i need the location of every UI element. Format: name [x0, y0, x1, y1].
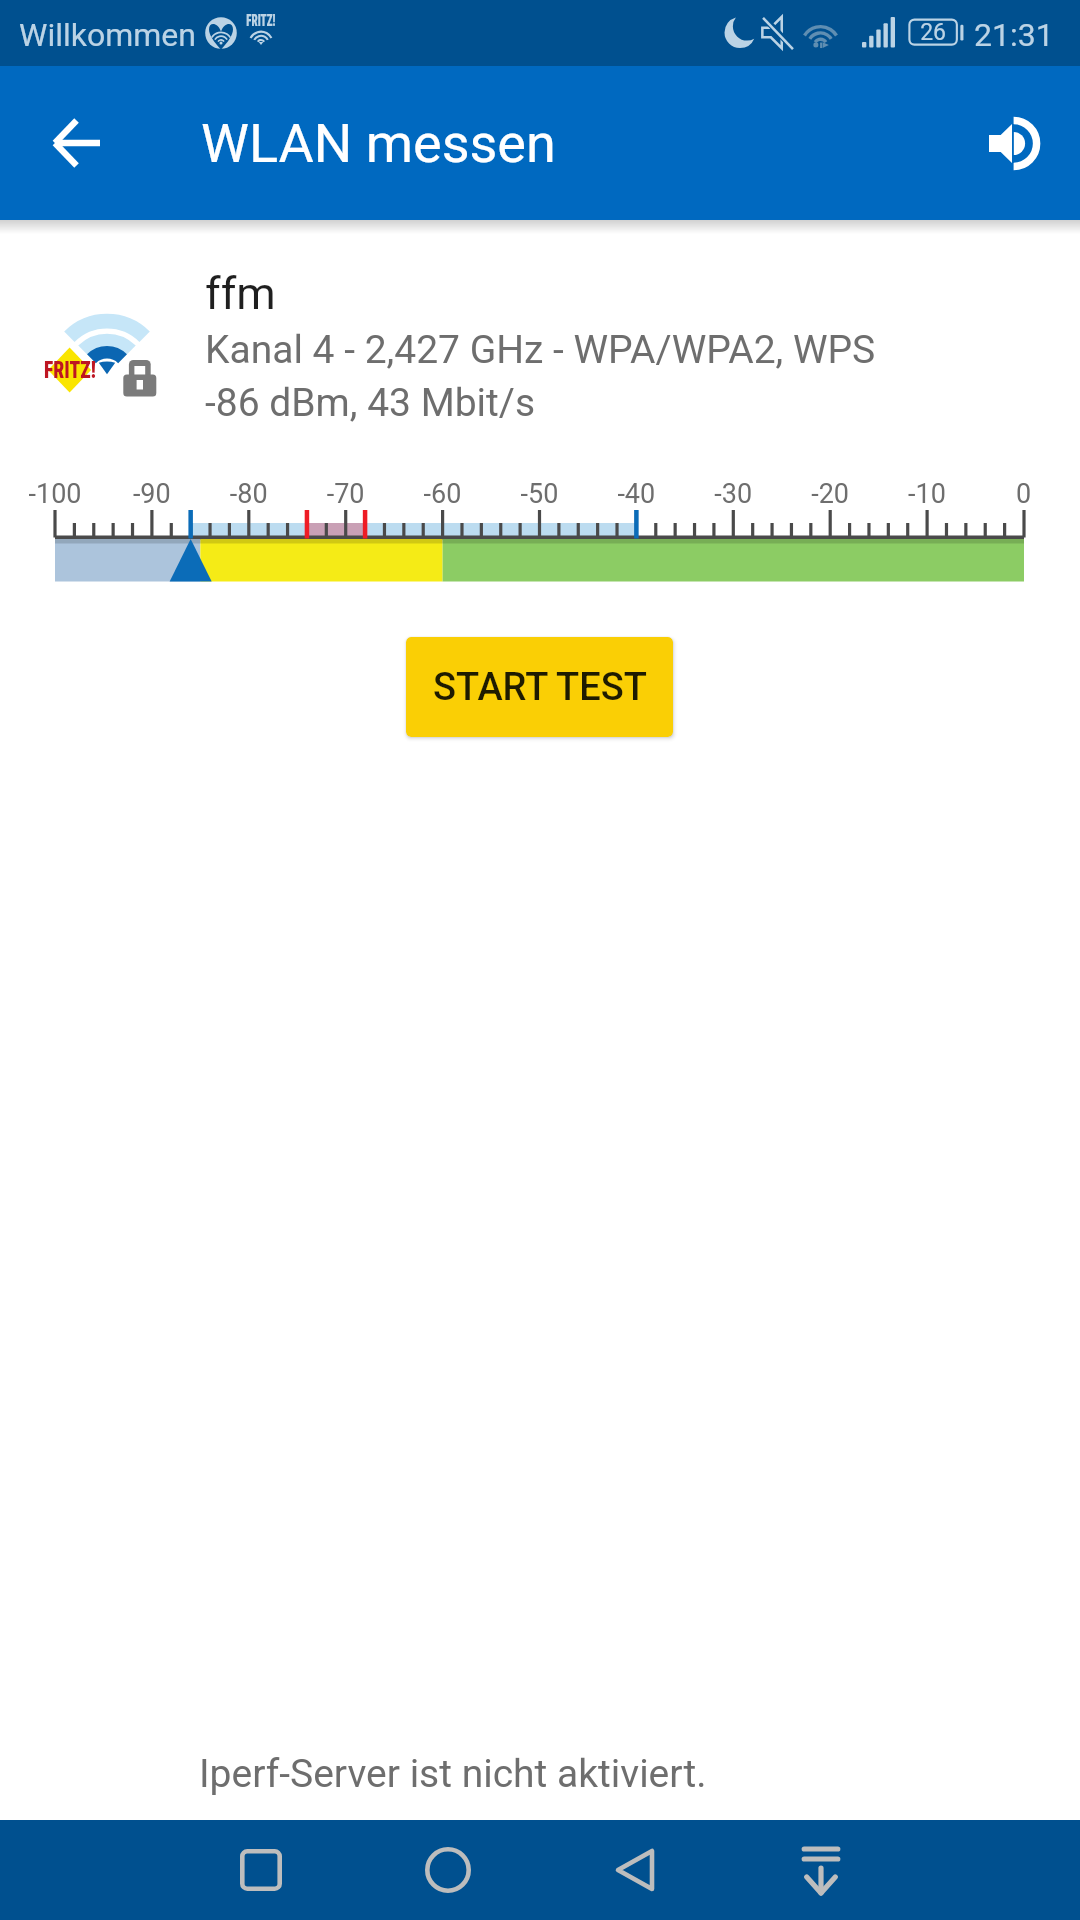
- button[interactable]: Volume: [948, 77, 1080, 209]
- staticText: START TEST: [433, 665, 647, 710]
- button[interactable]: Back: [11, 77, 143, 209]
- button[interactable]: Hide navigation bar: [728, 1820, 914, 1920]
- staticText: WLAN messen: [201, 112, 556, 175]
- button[interactable]: Back: [541, 1820, 728, 1920]
- button[interactable]: Recents: [167, 1820, 354, 1920]
- button[interactable]: Home: [354, 1820, 541, 1920]
- button[interactable]: START TEST: [406, 637, 673, 737]
